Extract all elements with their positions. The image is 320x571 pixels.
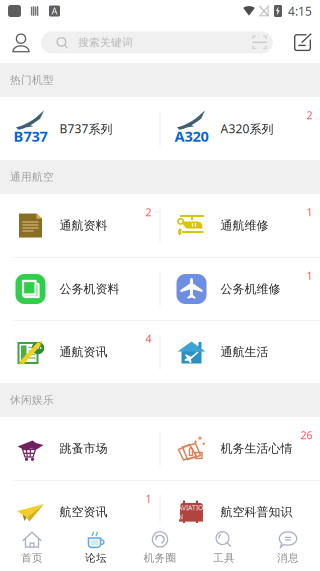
staticText: 工具	[213, 551, 235, 564]
button[interactable]: 通航资料	[0, 194, 159, 257]
button[interactable]: 机务圈	[128, 523, 192, 571]
button[interactable]: 通航维修	[160, 194, 320, 257]
button[interactable]: 通航资讯	[0, 320, 159, 383]
staticText: 1	[306, 205, 312, 219]
button[interactable]: B737	[0, 97, 159, 160]
staticText: 4:15	[288, 3, 312, 19]
staticText: 4	[145, 331, 151, 346]
button[interactable]: 公务机维修	[160, 257, 320, 320]
button[interactable]: 首页	[0, 523, 64, 571]
staticText: 26	[300, 428, 312, 442]
staticText: 搜索关键词	[78, 36, 133, 49]
button[interactable]: A320	[160, 97, 320, 160]
staticText: 通航维修	[220, 218, 268, 233]
button[interactable]: 工具	[192, 523, 256, 571]
staticText: 通用航空	[10, 170, 54, 183]
staticText: 航空科普知识	[220, 505, 292, 519]
staticText: 1	[145, 491, 151, 506]
button[interactable]: 论坛	[64, 523, 128, 571]
staticText: 通航资讯	[59, 345, 107, 359]
button[interactable]: 消息	[256, 523, 320, 571]
button[interactable]: Profile	[4, 26, 38, 58]
button[interactable]: 公务机资料	[0, 257, 159, 320]
staticText: 通航生活	[220, 345, 268, 359]
staticText: 1	[306, 268, 312, 283]
button[interactable]: 跳蚤市场	[0, 417, 159, 480]
staticText: AVIATION	[178, 503, 205, 521]
staticText: 首页	[21, 551, 43, 564]
staticText: 2	[145, 205, 151, 219]
staticText: 机务圈	[143, 551, 176, 564]
staticText: A320系列	[220, 120, 273, 136]
staticText: B737系列	[59, 120, 112, 136]
staticText: A320	[174, 126, 208, 146]
staticText: 休闲娱乐	[10, 393, 54, 406]
staticText: 跳蚤市场	[59, 441, 107, 456]
button[interactable]: 搜索关键词	[41, 31, 273, 53]
staticText: 通航资料	[59, 218, 107, 233]
button[interactable]: 机务生活心情	[160, 417, 320, 480]
staticText: 论坛	[85, 551, 107, 564]
button[interactable]: AVIATION	[160, 480, 320, 543]
staticText: 公务机资料	[59, 282, 119, 296]
staticText: 公务机维修	[220, 282, 280, 296]
staticText: 机务生活心情	[220, 441, 292, 456]
staticText: B737	[13, 126, 47, 146]
staticText: 航空资讯	[59, 505, 107, 519]
button[interactable]: 航空资讯	[0, 480, 159, 543]
staticText: A	[51, 5, 57, 17]
staticText: 热门机型	[10, 73, 54, 86]
button[interactable]: 通航生活	[160, 320, 320, 383]
staticText: 2	[306, 108, 312, 122]
staticText: 消息	[277, 551, 299, 564]
button[interactable]: Compose	[290, 29, 316, 55]
